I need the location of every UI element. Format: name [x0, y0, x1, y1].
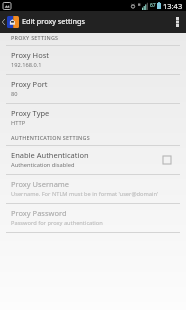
button[interactable]: Proxy Host: [0, 46, 186, 75]
button[interactable]: Proxy Password: [0, 204, 186, 233]
staticText: Edit proxy settings: [22, 16, 85, 26]
button[interactable]: Proxy Username: [0, 175, 186, 204]
staticText: PROXY SETTINGS: [11, 34, 59, 41]
staticText: Proxy Host: [11, 50, 50, 60]
button[interactable]: Navigate up: [0, 11, 85, 33]
staticText: 192.168.0.1: [11, 61, 42, 69]
staticText: HTTP: [11, 119, 26, 127]
staticText: Proxy Type: [11, 108, 50, 118]
staticText: 67: [150, 2, 156, 9]
button[interactable]: Proxy Type: [0, 104, 186, 133]
staticText: Password for proxy authentication: [11, 219, 103, 227]
staticText: Enable Authentication: [11, 150, 89, 160]
staticText: Username. For NTLM must be in format 'us…: [11, 190, 159, 198]
staticText: AUTHENTICATION SETTINGS: [11, 134, 90, 141]
button[interactable]: Proxy Port: [0, 75, 186, 104]
staticText: Proxy Password: [11, 208, 67, 218]
staticText: 80: [11, 90, 18, 98]
button[interactable]: More options: [168, 11, 186, 33]
staticText: Proxy Port: [11, 79, 48, 89]
staticText: Authentication disabled: [11, 161, 75, 169]
staticText: 13:43: [163, 1, 183, 11]
button[interactable]: Enable Authentication: [0, 146, 186, 175]
staticText: Proxy Username: [11, 179, 70, 189]
